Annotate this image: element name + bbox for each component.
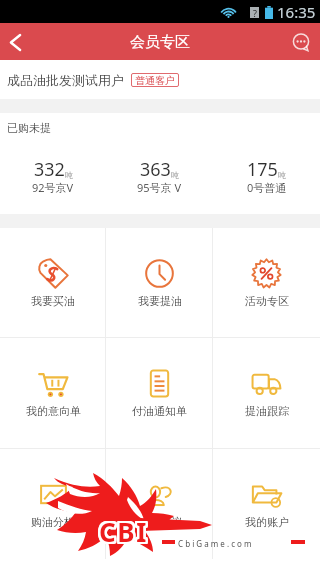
button[interactable]: More options [282,23,320,60]
button[interactable]: Back [0,23,30,60]
button[interactable]: 332 [0,143,106,214]
staticText: CBI [100,512,149,547]
staticText: 付油通知单 [132,404,187,418]
staticText: CBI [99,515,148,550]
staticText: CBI [98,513,147,548]
staticText: CBI [101,515,150,550]
staticText: 吨 [65,170,73,180]
staticText: 92号京V [32,180,74,195]
staticText: 16:35 [277,2,316,22]
button[interactable]: 175 [213,143,320,214]
button[interactable]: 我的账户 [213,449,320,559]
staticText: 会员专区 [130,33,190,52]
staticText: CBI [99,513,148,548]
staticText: 购油分析 [31,515,75,529]
button[interactable]: 购油分析 [0,449,106,559]
staticText: CBI [97,514,146,549]
staticText: CBI [99,516,148,551]
staticText: CBI [99,514,148,549]
staticText: CBI [97,512,146,547]
staticText: CBI [98,512,147,547]
staticText: CBI [100,516,149,551]
staticText: CBI [100,513,149,548]
staticText: CBI [97,516,146,551]
staticText: CBI [101,516,150,551]
staticText: 0号普通 [247,180,287,195]
button[interactable]: 付油通知单 [106,338,213,448]
button[interactable]: 我要建议 [106,449,213,559]
staticText: 95号京 V [137,180,182,195]
staticText: CBI [101,513,150,548]
button[interactable]: 363 [106,143,213,214]
staticText: 我的意向单 [26,404,81,418]
staticText: CBI [99,512,148,547]
staticText: 363 [140,157,171,182]
button[interactable]: 提油跟踪 [213,338,320,448]
staticText: CBI [101,512,150,547]
staticText: CBI [97,513,146,548]
staticText: 吨 [171,170,179,180]
staticText: C b i G a m e . c o m [178,538,252,549]
button[interactable]: 我要买油 [0,228,106,337]
button[interactable]: 我要提油 [106,228,213,337]
staticText: 吨 [278,170,286,180]
staticText: CBI [98,515,147,550]
button[interactable]: 活动专区 [213,228,320,337]
staticText: 提油跟踪 [245,404,289,418]
staticText: 332 [34,157,65,182]
staticText: CBI [100,514,149,549]
staticText: 活动专区 [245,294,289,308]
staticText: 我要买油 [31,294,75,308]
staticText: 已购未提 [7,121,51,135]
staticText: CBI [100,515,149,550]
staticText: 成品油批发测试用户 [7,72,124,88]
staticText: 我要提油 [138,294,182,308]
staticText: 普通客户 [135,74,175,87]
staticText: CBI [98,516,147,551]
staticText: 我的账户 [245,515,289,529]
staticText: 我要建议 [138,515,182,529]
staticText: CBI [101,514,150,549]
staticText: CBI [98,514,147,549]
staticText: 175 [247,157,278,182]
staticText: ? [253,7,257,18]
button[interactable]: 我的意向单 [0,338,106,448]
staticText: CBI [97,515,146,550]
